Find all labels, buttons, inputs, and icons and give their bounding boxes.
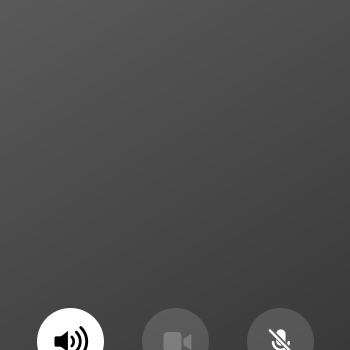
button[interactable]: Speaker [37,308,104,350]
button[interactable]: Unmute [247,308,314,350]
button[interactable]: Turn camera on [142,308,209,350]
